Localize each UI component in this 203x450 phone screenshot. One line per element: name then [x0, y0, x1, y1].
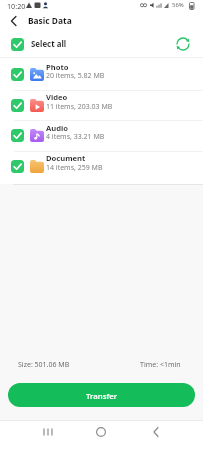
- staticText: Time: <1min: [140, 360, 181, 370]
- button[interactable]: [0, 120, 203, 151]
- staticText: Transfer: [86, 391, 118, 402]
- staticText: 56%: [172, 1, 184, 9]
- staticText: 4 items, 33.21 MB: [46, 132, 105, 142]
- button[interactable]: [146, 422, 166, 442]
- button[interactable]: [11, 129, 24, 142]
- button[interactable]: [0, 90, 203, 121]
- staticText: Audio: [46, 123, 69, 133]
- button[interactable]: [91, 422, 111, 442]
- staticText: Document: [46, 153, 86, 163]
- staticText: 10:20: [7, 1, 26, 11]
- button[interactable]: [0, 59, 203, 90]
- staticText: 20 items, 5.82 MB: [46, 71, 105, 81]
- button[interactable]: [11, 99, 24, 112]
- button[interactable]: [6, 13, 22, 29]
- staticText: 11 items, 203.03 MB: [46, 102, 113, 112]
- button[interactable]: [38, 422, 58, 442]
- button[interactable]: [11, 38, 24, 51]
- staticText: Photo: [46, 62, 69, 72]
- button[interactable]: Transfer: [8, 383, 195, 407]
- staticText: Video: [46, 92, 68, 102]
- staticText: Select all: [31, 39, 67, 50]
- staticText: 14 items, 259 MB: [46, 163, 103, 173]
- button[interactable]: [174, 35, 192, 53]
- staticText: Size: 501.06 MB: [18, 360, 70, 370]
- staticText: Basic Data: [28, 15, 72, 26]
- button[interactable]: [11, 160, 24, 173]
- button[interactable]: [0, 33, 160, 57]
- button[interactable]: [11, 68, 24, 81]
- button[interactable]: [0, 151, 203, 182]
